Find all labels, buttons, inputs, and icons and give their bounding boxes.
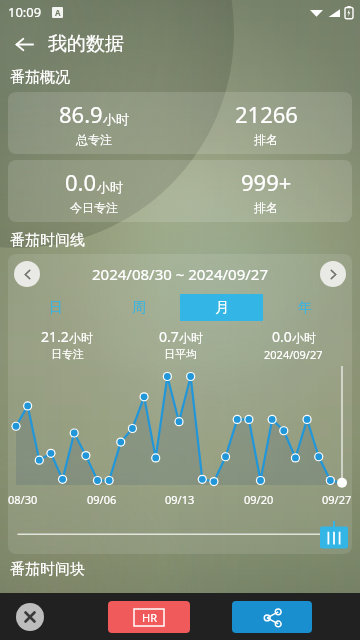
staticText: 周 bbox=[132, 299, 146, 317]
staticText: 10:09 bbox=[8, 3, 42, 21]
staticText: 09/13 bbox=[165, 492, 195, 507]
staticText: 我的数据 bbox=[48, 32, 124, 56]
button[interactable]: Next bbox=[320, 261, 346, 287]
staticText: 999+ bbox=[241, 167, 292, 197]
staticText: 0.0 bbox=[65, 167, 97, 197]
button[interactable]: Back bbox=[6, 26, 42, 62]
staticText: 日 bbox=[49, 299, 63, 317]
staticText: 番茄概况 bbox=[10, 68, 70, 87]
staticText: 年 bbox=[298, 299, 312, 317]
staticText: 月 bbox=[215, 299, 229, 317]
staticText: 2024/08/30 ~ 2024/09/27 bbox=[92, 264, 268, 284]
button[interactable]: Close bbox=[16, 603, 44, 631]
button[interactable]: Share bbox=[232, 601, 312, 633]
staticText: 日平均 bbox=[164, 347, 197, 361]
staticText: 08/30 bbox=[8, 492, 38, 507]
staticText: 0.7 bbox=[159, 327, 179, 346]
staticText: 86.9 bbox=[59, 99, 103, 129]
staticText: HR bbox=[142, 610, 157, 625]
staticText: 小时 bbox=[97, 179, 123, 195]
button[interactable]: 0.0 bbox=[8, 160, 352, 222]
staticText: 0.0 bbox=[272, 327, 292, 346]
button[interactable]: Scrub handle bbox=[320, 521, 348, 551]
staticText: 总专注 bbox=[76, 132, 112, 147]
button[interactable]: 周 bbox=[97, 294, 180, 321]
staticText: 今日专注 bbox=[70, 200, 118, 215]
staticText: 小时 bbox=[103, 111, 129, 127]
staticText: 09/27 bbox=[322, 492, 352, 507]
button[interactable]: 月 bbox=[180, 294, 263, 321]
button[interactable]: Previous bbox=[14, 261, 40, 287]
staticText: 小时 bbox=[292, 330, 316, 345]
staticText: 番茄时间块 bbox=[10, 560, 85, 578]
staticText: 21.2 bbox=[41, 327, 69, 346]
staticText: 排名 bbox=[254, 132, 278, 147]
staticText: 小时 bbox=[179, 330, 203, 345]
button[interactable]: 日 bbox=[14, 294, 97, 321]
button[interactable]: 年 bbox=[263, 294, 346, 321]
staticText: 21266 bbox=[235, 99, 298, 129]
staticText: 2024/09/27 bbox=[264, 347, 323, 362]
staticText: 番茄时间线 bbox=[10, 231, 85, 250]
staticText: A bbox=[55, 7, 61, 18]
staticText: 09/20 bbox=[244, 492, 274, 507]
staticText: 09/06 bbox=[87, 492, 117, 507]
staticText: 日专注 bbox=[51, 347, 84, 361]
button[interactable]: 86.9 bbox=[8, 92, 352, 154]
button[interactable]: HR bbox=[108, 601, 190, 633]
staticText: 小时 bbox=[69, 330, 93, 345]
staticText: 排名 bbox=[254, 200, 278, 215]
